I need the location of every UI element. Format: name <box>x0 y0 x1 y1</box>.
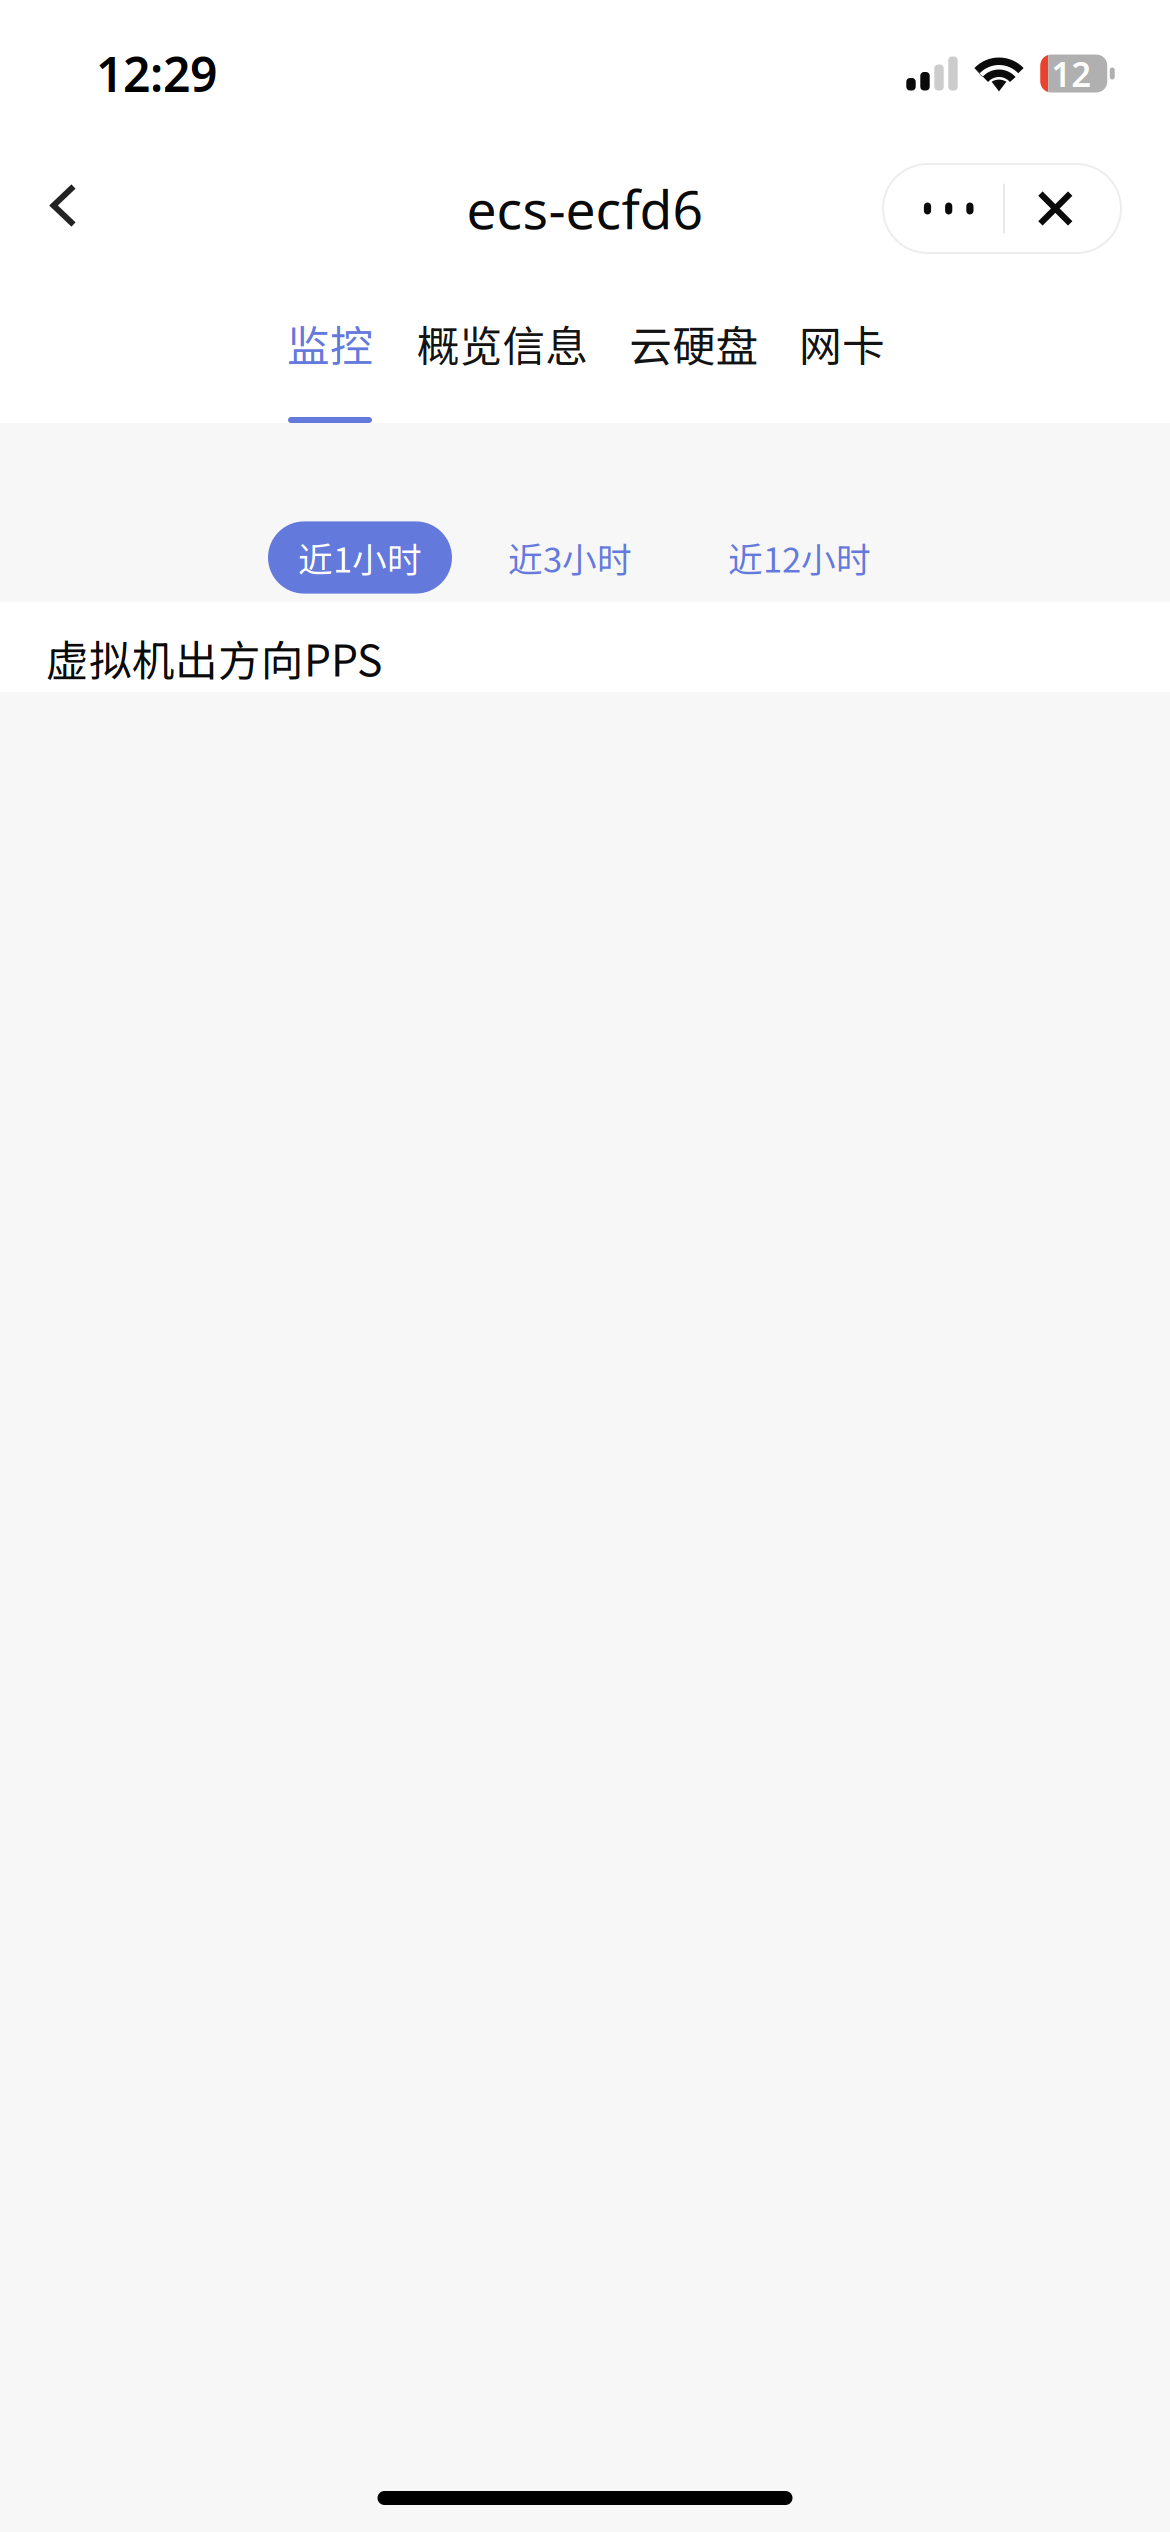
button[interactable]: More options <box>883 164 1003 253</box>
staticText: 12:29 <box>96 42 217 105</box>
staticText: ecs-ecfd6 <box>466 173 703 244</box>
staticText: 近1小时 <box>298 532 422 583</box>
button[interactable]: 概览信息 <box>418 270 587 423</box>
staticText: 概览信息 <box>416 313 588 374</box>
button[interactable]: 监控 <box>288 270 372 423</box>
staticText: 网卡 <box>799 313 885 374</box>
button[interactable]: 云硬盘 <box>631 270 757 423</box>
button[interactable]: Back <box>14 156 108 261</box>
staticText: 监控 <box>287 313 373 374</box>
staticText: 12 <box>1051 50 1091 96</box>
button[interactable]: 近1小时 <box>268 521 452 594</box>
staticText: 云硬盘 <box>629 313 758 374</box>
button[interactable]: Close <box>1005 164 1121 253</box>
button[interactable]: 近3小时 <box>478 521 662 594</box>
staticText: 近12小时 <box>728 532 871 583</box>
button[interactable]: 近12小时 <box>698 521 901 594</box>
button[interactable]: 网卡 <box>801 270 883 423</box>
staticText: 近3小时 <box>508 532 632 583</box>
staticText: 虚拟机出方向PPS <box>46 627 382 689</box>
